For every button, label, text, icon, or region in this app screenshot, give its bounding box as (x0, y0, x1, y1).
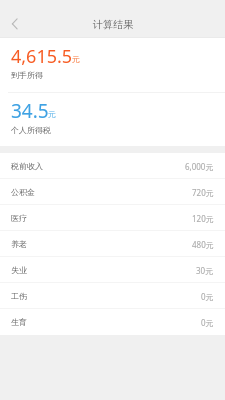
staticText: 税前收入 (11, 161, 43, 171)
staticText: 医疗 (11, 213, 27, 223)
staticText: 生育 (11, 317, 27, 327)
button[interactable]: 税前收入 (0, 153, 225, 179)
staticText: 元 (48, 109, 56, 119)
staticText: 4,615.5 (11, 44, 73, 69)
staticText: 30元 (196, 265, 214, 276)
button[interactable]: 失业 (0, 257, 225, 283)
staticText: 失业 (11, 265, 27, 275)
staticText: 养老 (11, 239, 27, 249)
staticText: 个人所得税 (11, 125, 51, 135)
staticText: 34.5 (11, 98, 49, 124)
button[interactable]: 公积金 (0, 179, 225, 205)
staticText: 工伤 (11, 291, 27, 301)
button[interactable]: Back (0, 12, 30, 37)
button[interactable]: 工伤 (0, 283, 225, 309)
staticText: 6,000元 (185, 161, 214, 172)
button[interactable]: 医疗 (0, 205, 225, 231)
staticText: 0元 (201, 317, 214, 328)
staticText: 480元 (192, 239, 214, 250)
button[interactable]: 养老 (0, 231, 225, 257)
button[interactable]: 生育 (0, 309, 225, 335)
staticText: 0元 (201, 291, 214, 302)
staticText: 元 (72, 54, 80, 64)
staticText: 720元 (192, 187, 214, 198)
staticText: 计算结果 (93, 18, 133, 31)
staticText: 120元 (192, 213, 214, 224)
staticText: 公积金 (11, 187, 35, 197)
staticText: 到手所得 (11, 70, 43, 80)
